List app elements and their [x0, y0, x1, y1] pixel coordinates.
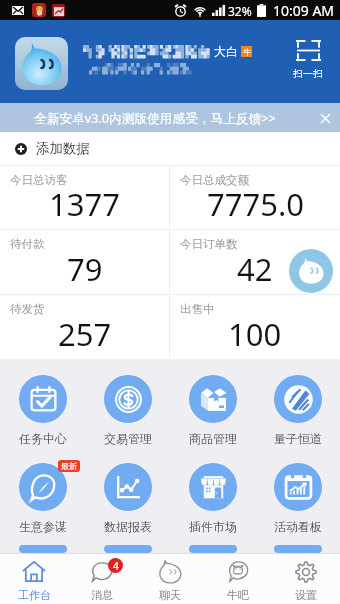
staticText: 聊天	[159, 588, 181, 602]
staticText: 42	[237, 248, 273, 290]
staticText: 牛吧	[227, 588, 249, 602]
staticText: 任务中心	[19, 431, 67, 446]
staticText: 扫一扫	[293, 67, 323, 80]
button[interactable]: 待发货	[0, 295, 169, 359]
button[interactable]: 商品管理	[170, 375, 255, 463]
staticText: 待发货	[10, 302, 45, 316]
staticText: 生意参谋	[19, 519, 67, 534]
staticText: 设置	[295, 588, 317, 602]
button[interactable]: Close banner	[317, 110, 333, 126]
staticText: 活动看板	[274, 519, 322, 534]
staticText: 今日总成交额	[180, 173, 249, 187]
staticText: 7775.0	[207, 183, 304, 225]
button[interactable]: 最新	[0, 463, 85, 545]
staticText: 4	[113, 559, 119, 573]
button[interactable]: 4	[68, 553, 136, 604]
button[interactable]: 量子恒道	[255, 375, 340, 463]
staticText: 最新	[61, 461, 77, 471]
staticText: 10:09 AM	[273, 1, 335, 20]
staticText: 插件市场	[189, 519, 237, 534]
button[interactable]: 插件市场	[170, 463, 255, 545]
button[interactable]: 聊天	[136, 553, 204, 604]
button[interactable]: 全新安卓v3.0内测版使用感受，马上反馈>>	[0, 103, 340, 132]
button[interactable]: 交易管理	[85, 375, 170, 463]
staticText: 交易管理	[104, 431, 152, 446]
button[interactable]: 今日订单数	[170, 230, 340, 294]
staticText: 商品管理	[189, 431, 237, 446]
staticText: 今日总访客	[10, 173, 68, 187]
button[interactable]: 数据报表	[85, 463, 170, 545]
button[interactable]: 任务中心	[0, 375, 85, 463]
staticText: 出售中	[180, 302, 215, 316]
staticText: 257	[58, 313, 112, 355]
staticText: 今日订单数	[180, 237, 238, 251]
button[interactable]: 添加数据	[0, 132, 340, 165]
button[interactable]: 设置	[272, 553, 340, 604]
staticText: 添加数据	[36, 140, 90, 157]
button[interactable]: 活动看板	[255, 463, 340, 545]
button[interactable]: 待付款	[0, 230, 169, 294]
button[interactable]: 工作台	[0, 553, 68, 604]
staticText: 大白	[214, 44, 238, 59]
button[interactable]: 出售中	[170, 295, 340, 359]
staticText: 消息	[91, 588, 113, 602]
button[interactable]: 今日总成交额	[170, 166, 340, 229]
button[interactable]: 今日总访客	[0, 166, 169, 229]
staticText: 1377	[49, 183, 120, 225]
staticText: 工作台	[18, 588, 51, 602]
staticText: 待付款	[10, 237, 45, 251]
button[interactable]: Shop avatar	[15, 37, 68, 90]
staticText: 全新安卓v3.0内测版使用感受，马上反馈>>	[34, 109, 276, 126]
staticText: 32%	[228, 3, 252, 19]
button[interactable]: 牛吧	[204, 553, 272, 604]
button[interactable]: Scan QR code	[290, 40, 326, 80]
button[interactable]: Chat assistant	[289, 249, 333, 293]
staticText: 100	[228, 313, 282, 355]
staticText: 数据报表	[104, 519, 152, 534]
staticText: 79	[67, 248, 103, 290]
staticText: 牛	[243, 47, 251, 57]
staticText: 量子恒道	[274, 431, 322, 446]
